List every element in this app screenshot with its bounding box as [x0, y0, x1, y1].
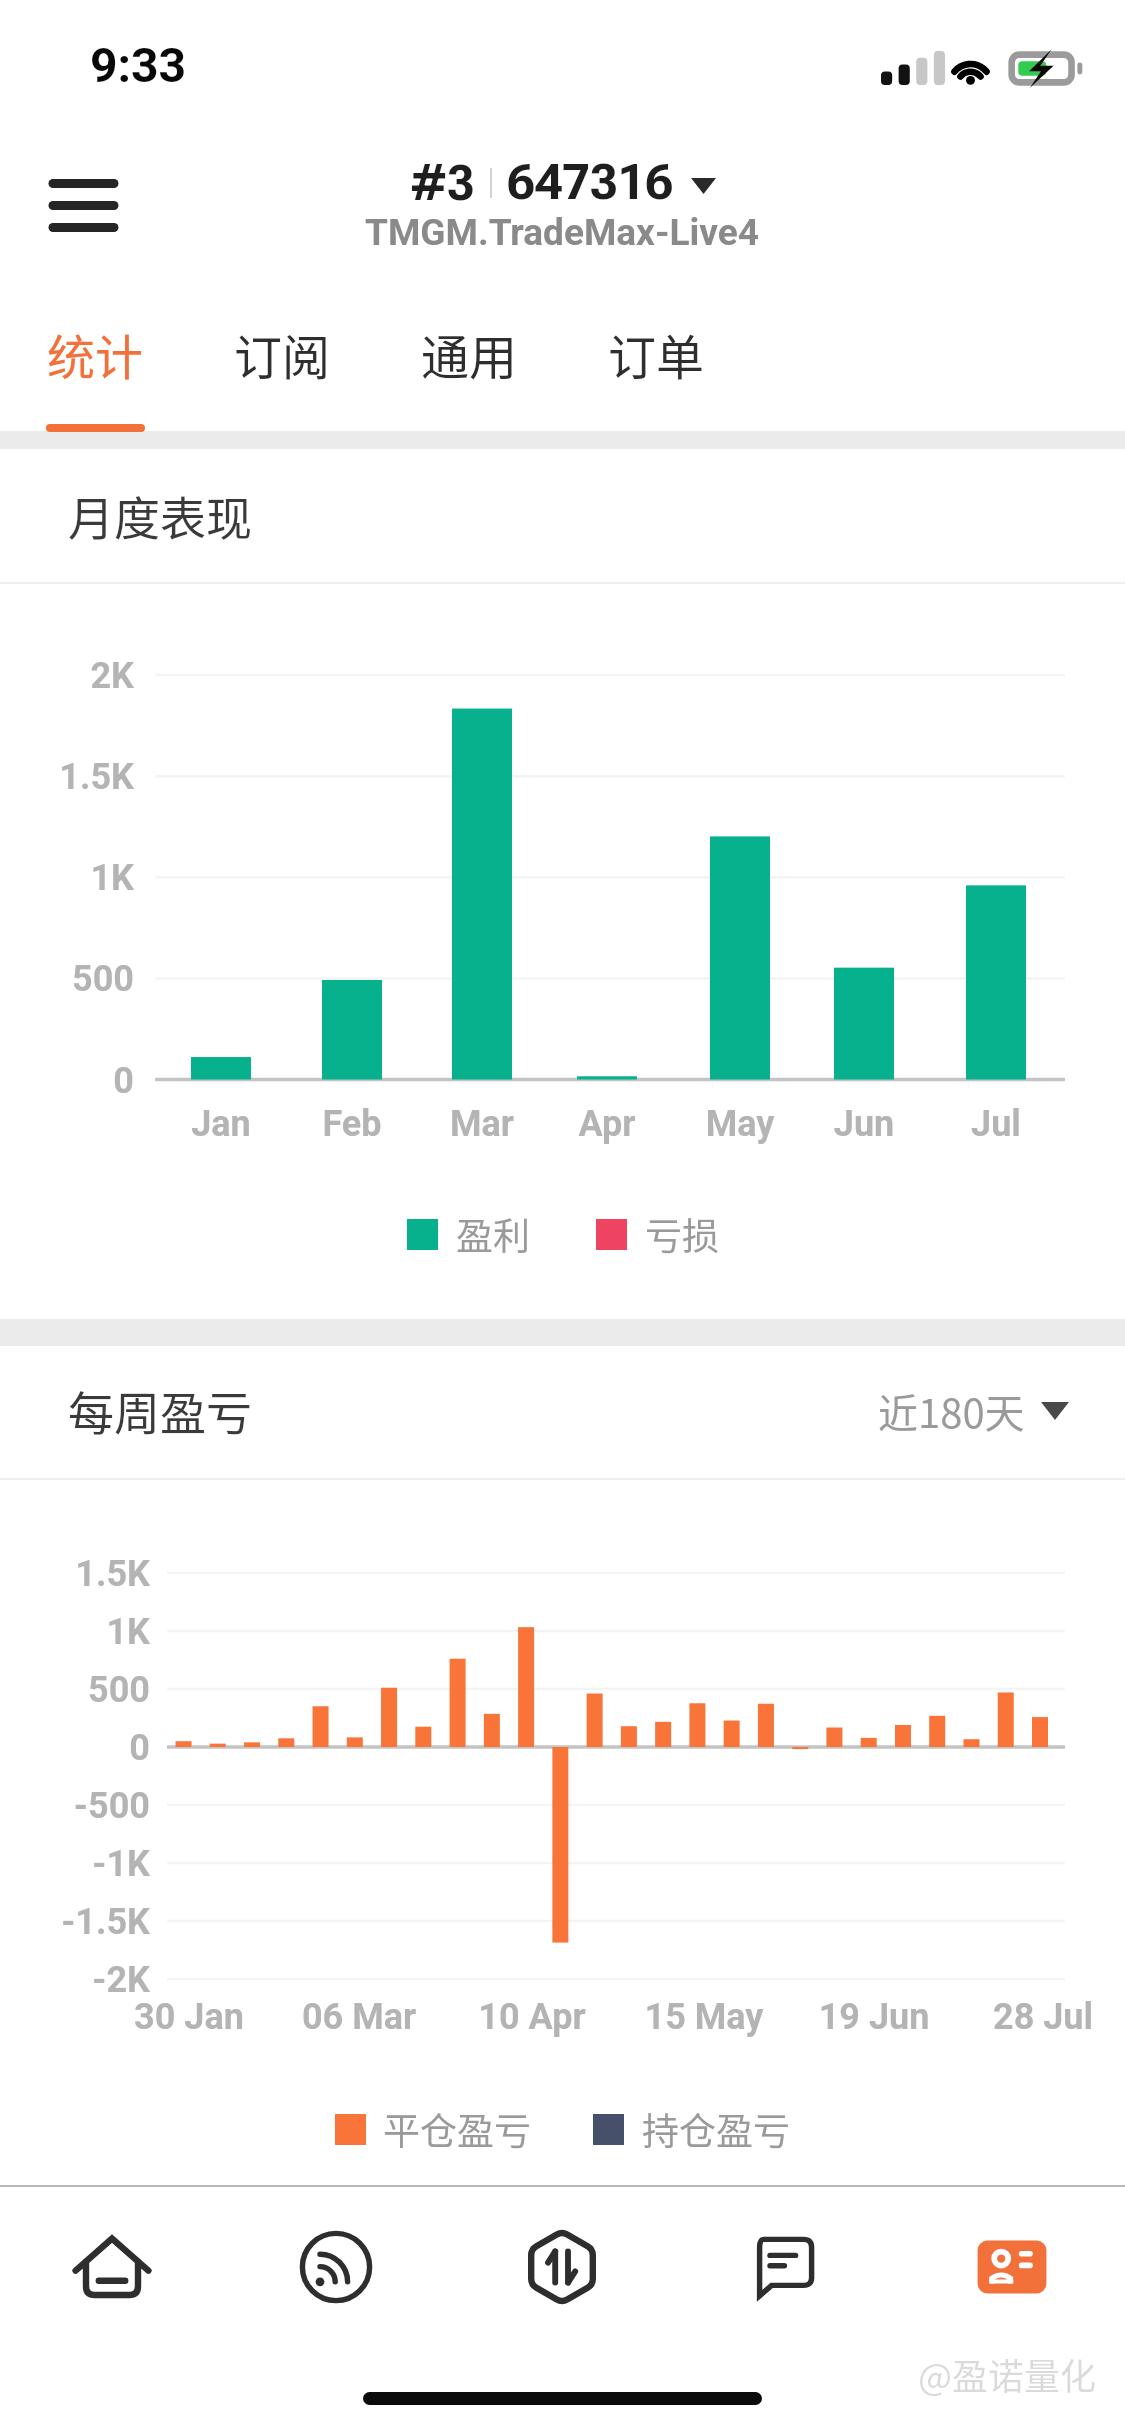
staticText: 0 [0, 1060, 134, 1102]
button[interactable]: 统计 [25, 300, 169, 432]
staticText: 亏损 [645, 1207, 719, 1261]
staticText: 500 [0, 958, 134, 1000]
staticText: -1K [0, 1843, 150, 1885]
staticText: 28 Jul [933, 1996, 1125, 2038]
staticText: 订阅 [234, 319, 331, 389]
staticText: 统计 [47, 319, 144, 389]
staticText: #3 [410, 155, 475, 211]
staticText: 30 Jan [79, 1996, 299, 2038]
staticText: 1.5K [0, 1553, 150, 1595]
staticText: Mar [412, 1103, 552, 1145]
staticText: -1.5K [0, 1901, 150, 1943]
staticText: 1.5K [0, 756, 134, 798]
button[interactable]: 订单 [586, 300, 730, 432]
staticText: 0 [0, 1727, 150, 1769]
staticText: Feb [282, 1103, 422, 1145]
button[interactable]: Profile [952, 2207, 1072, 2327]
staticText: Jan [151, 1103, 291, 1145]
staticText: 1K [0, 857, 134, 899]
staticText: TMGM.TradeMax-Live4 [365, 211, 760, 254]
staticText: -500 [0, 1785, 150, 1827]
staticText: Jun [794, 1103, 934, 1145]
staticText: 19 Jun [764, 1996, 984, 2038]
staticText: 06 Mar [249, 1996, 469, 2038]
staticText: 盈利 [456, 1207, 530, 1261]
button[interactable]: Menu [33, 155, 133, 255]
staticText: 15 May [594, 1996, 814, 2038]
button[interactable]: Trade [502, 2207, 622, 2327]
staticText: 近180天 [878, 1382, 1025, 1440]
button[interactable]: 订阅 [212, 300, 356, 432]
staticText: May [670, 1103, 810, 1145]
staticText: 2K [0, 655, 134, 697]
staticText: 9:33 [90, 37, 187, 93]
staticText: -2K [0, 1959, 150, 2001]
staticText: 平仓盈亏 [383, 2102, 531, 2156]
staticText: @盈诺量化 [918, 2348, 1097, 2400]
staticText: Jul [926, 1103, 1066, 1145]
staticText: Apr [537, 1103, 677, 1145]
staticText: 持仓盈亏 [642, 2102, 790, 2156]
staticText: 500 [0, 1669, 150, 1711]
staticText: 订单 [608, 319, 705, 389]
button[interactable]: 近180天 [878, 1382, 1069, 1440]
button[interactable]: Messages [726, 2207, 846, 2327]
button[interactable]: Home [52, 2207, 172, 2327]
staticText: 通用 [421, 319, 518, 389]
staticText: 10 Apr [422, 1996, 642, 2038]
staticText: 每周盈亏 [68, 1377, 252, 1444]
button[interactable]: Signals [276, 2207, 396, 2327]
button[interactable]: 通用 [399, 300, 543, 432]
staticText: 1K [0, 1611, 150, 1653]
staticText: 月度表现 [68, 482, 252, 549]
staticText: 647316 [507, 154, 673, 211]
